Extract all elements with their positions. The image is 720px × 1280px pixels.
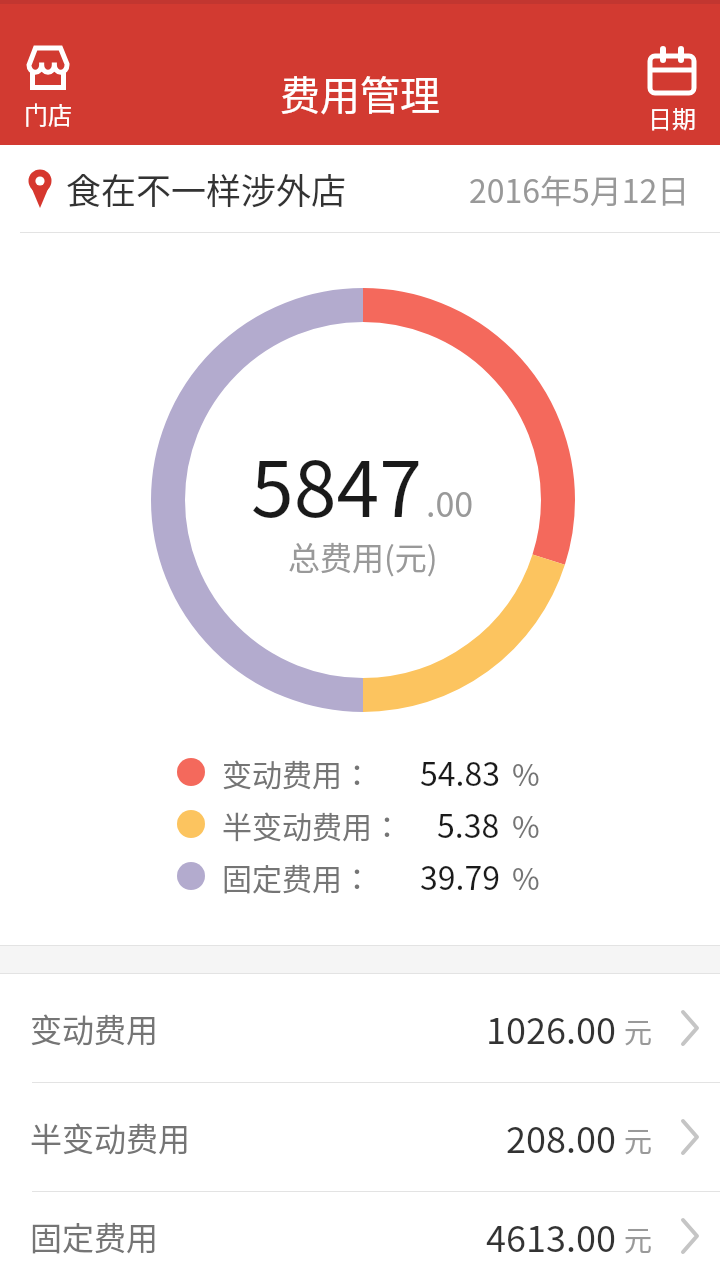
staticText: 门店	[24, 96, 72, 131]
button[interactable]: 变动费用	[0, 974, 720, 1082]
staticText: 固定费用：	[222, 855, 372, 898]
staticText: 5.38	[437, 801, 500, 847]
button[interactable]: 固定费用	[0, 1192, 720, 1280]
staticText: 元	[624, 1219, 653, 1260]
staticText: 总费用(元)	[288, 533, 438, 579]
staticText: 食在不一样涉外店	[66, 163, 347, 214]
staticText: 半变动费用：	[222, 803, 402, 846]
staticText: 日期	[648, 100, 696, 135]
staticText: 元	[624, 1011, 653, 1052]
staticText: 变动费用：	[222, 751, 372, 794]
staticText: %	[512, 855, 540, 898]
staticText: .00	[426, 478, 474, 527]
staticText: 半变动费用	[30, 1114, 191, 1160]
staticText: 208.00	[506, 1111, 616, 1163]
staticText: 4613.00	[486, 1210, 616, 1262]
staticText: 元	[624, 1120, 653, 1161]
button[interactable]: 日期	[640, 46, 704, 135]
staticText: %	[512, 803, 540, 846]
staticText: 2016年5月12日	[469, 166, 690, 212]
button[interactable]: 食在不一样涉外店	[0, 145, 720, 233]
staticText: %	[512, 751, 540, 794]
staticText: 费用管理	[280, 64, 440, 122]
staticText: 1026.00	[486, 1002, 616, 1054]
staticText: 5847	[251, 428, 422, 539]
button[interactable]: 半变动费用	[0, 1083, 720, 1191]
staticText: 54.83	[420, 749, 500, 795]
staticText: 固定费用	[30, 1213, 159, 1259]
staticText: 39.79	[420, 853, 500, 899]
staticText: 变动费用	[30, 1005, 159, 1051]
button[interactable]: 门店	[16, 44, 80, 131]
